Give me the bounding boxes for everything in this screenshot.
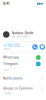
button[interactable]: Call [32,44,38,50]
staticText: Groups in Common [3,87,33,90]
staticText: INFO [3,69,9,71]
staticText: Whatsapp [3,56,19,59]
button[interactable]: Andrew Smith [0,30,46,39]
button[interactable]: Groups in Common [0,86,46,91]
staticText: 9:41 [3,1,9,6]
staticText: mobile [3,48,10,50]
staticText: ▮▮▰ [37,2,43,5]
staticText: Notifications [3,77,23,80]
staticText: last seen recently [11,35,29,38]
staticText: Andrew Smith [11,31,33,35]
button[interactable]: Message [39,44,45,50]
staticText: Telegram [3,62,18,66]
staticText: +1 702 555 0199 [3,44,24,48]
button[interactable]: Whatsapp [0,55,46,60]
staticText: 2 groups [3,92,11,95]
button[interactable]: Notifications [0,76,46,81]
button[interactable]: Telegram [0,61,46,66]
